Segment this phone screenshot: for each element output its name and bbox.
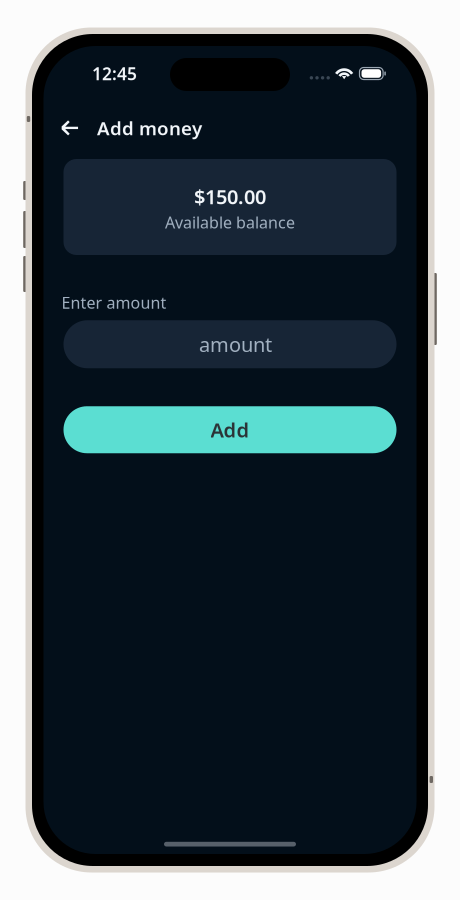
staticText: Add money	[97, 116, 202, 140]
button[interactable]: Back	[54, 113, 88, 147]
staticText: Available balance	[165, 212, 295, 233]
staticText: Add	[210, 416, 249, 443]
staticText: $150.00	[194, 183, 266, 210]
button[interactable]: Add	[63, 406, 396, 453]
staticText: 12:45	[92, 62, 137, 85]
button[interactable]: amount	[63, 320, 396, 368]
staticText: amount	[199, 331, 272, 358]
staticText: Enter amount	[61, 292, 166, 313]
